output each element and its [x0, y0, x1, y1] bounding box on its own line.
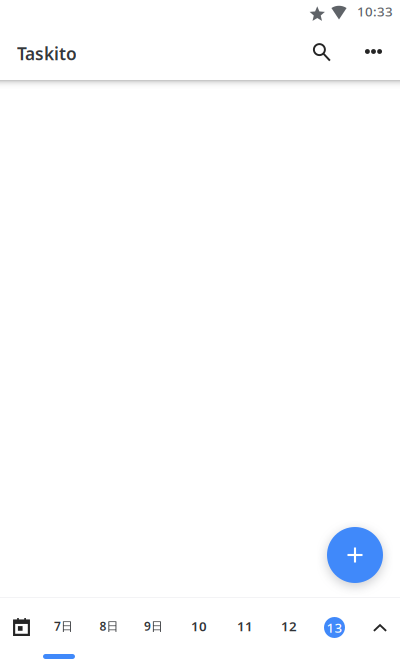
staticText: 7日: [54, 618, 73, 634]
button[interactable]: 7日: [41, 606, 85, 646]
button[interactable]: More options: [351, 29, 395, 73]
button[interactable]: 13: [312, 607, 356, 647]
button[interactable]: 9日: [131, 606, 175, 646]
staticText: 10: [191, 617, 207, 635]
staticText: 9日: [144, 618, 163, 634]
staticText: 12: [281, 617, 297, 635]
button[interactable]: Calendar: [0, 607, 43, 647]
button[interactable]: 8日: [87, 606, 131, 646]
staticText: Taskito: [17, 42, 77, 65]
button[interactable]: Search: [300, 30, 344, 74]
staticText: 13: [326, 619, 342, 636]
staticText: 10:33: [357, 2, 393, 20]
button[interactable]: 11: [223, 606, 267, 646]
staticText: 11: [237, 617, 253, 635]
button[interactable]: Show month view: [360, 608, 400, 648]
button[interactable]: 10: [177, 606, 221, 646]
button[interactable]: Add task: [327, 527, 383, 583]
staticText: 8日: [99, 618, 118, 634]
button[interactable]: 12: [267, 606, 311, 646]
